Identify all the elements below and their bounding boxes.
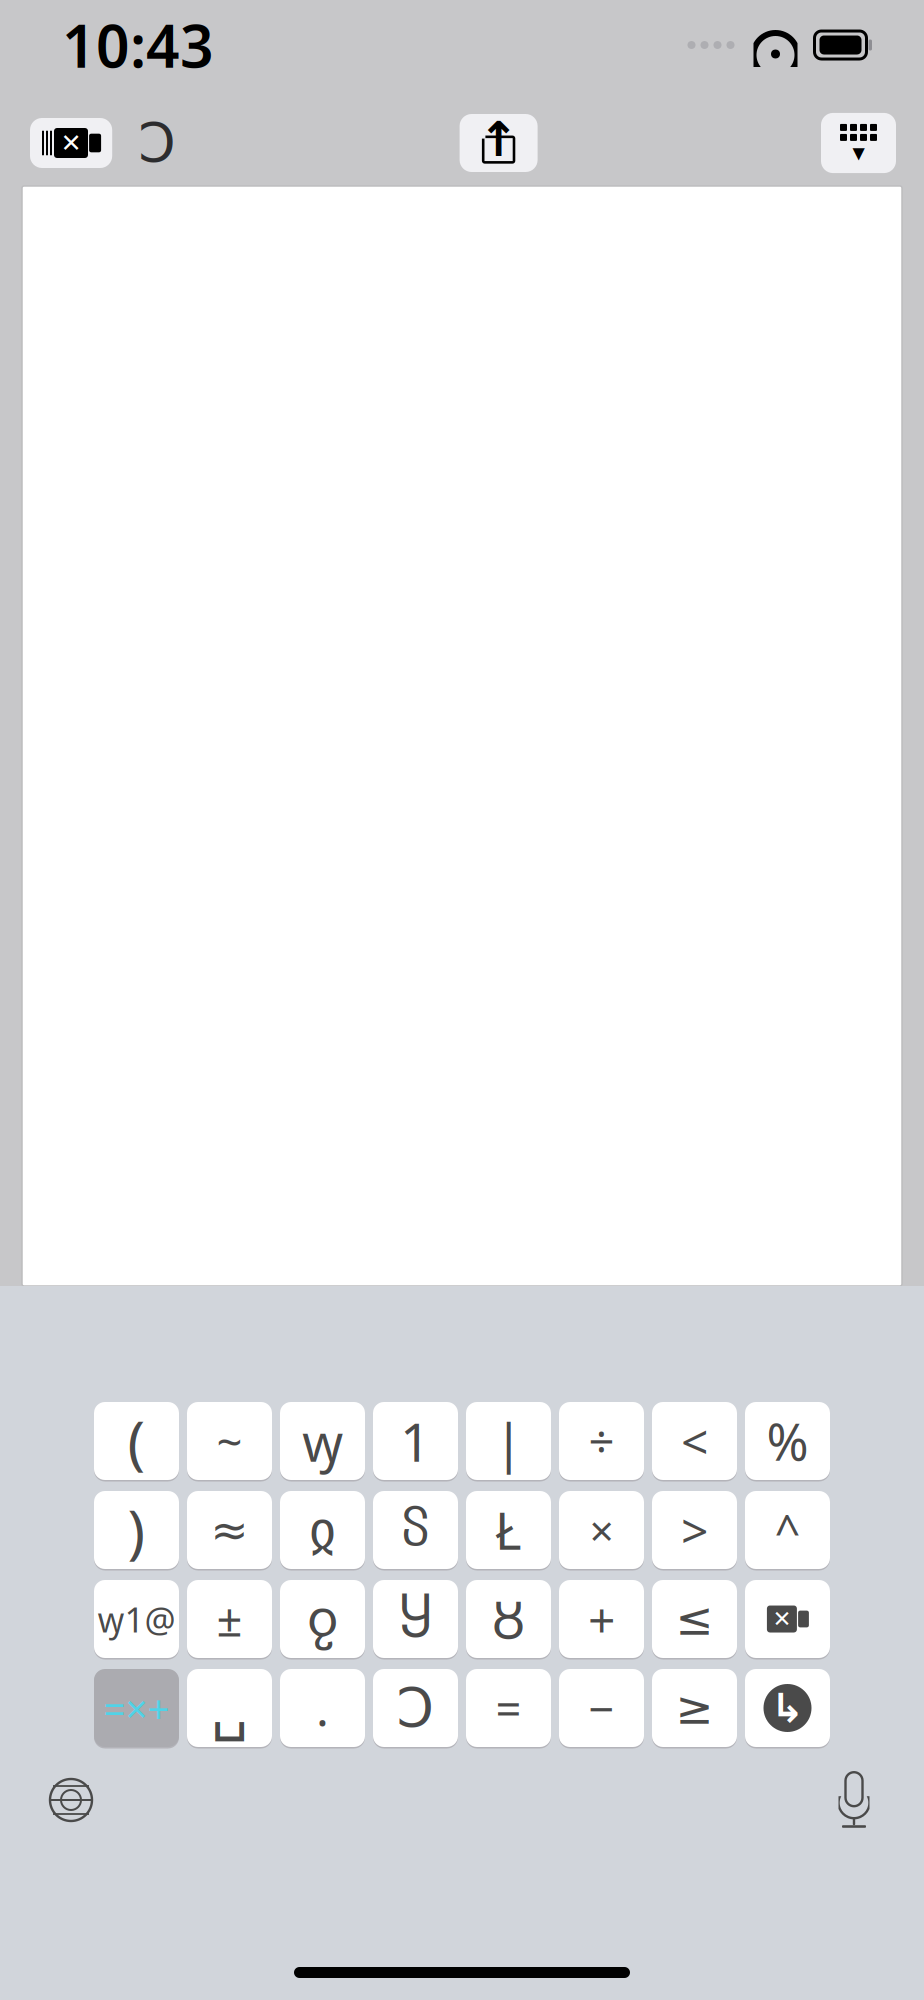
button[interactable]: Return [745, 1669, 830, 1747]
staticText: ^ [774, 1500, 800, 1560]
button[interactable]: % [745, 1402, 830, 1480]
button[interactable]: | [466, 1402, 551, 1480]
button[interactable]: ÷ [559, 1402, 644, 1480]
staticText: ჽ [401, 1504, 430, 1556]
button[interactable]: ≈ [187, 1491, 272, 1569]
staticText: 1 [400, 1406, 431, 1476]
button[interactable]: 1 [373, 1402, 458, 1480]
staticText: ჹ [307, 1589, 337, 1649]
button[interactable]: > [652, 1491, 737, 1569]
button[interactable]: . [280, 1669, 365, 1747]
button[interactable]: ≥ [652, 1669, 737, 1747]
button[interactable]: ჲ [280, 1491, 365, 1569]
staticText: ( [127, 1402, 145, 1480]
staticText: 10:43 [62, 6, 214, 84]
button[interactable]: ꝡ1@ [94, 1580, 179, 1658]
button[interactable]: ~ [187, 1402, 272, 1480]
button[interactable]: < [652, 1402, 737, 1480]
button[interactable]: Ł [466, 1491, 551, 1569]
button[interactable]: ꝡ [280, 1402, 365, 1480]
staticText: Ł [495, 1496, 522, 1564]
button[interactable]: Delete [745, 1580, 830, 1658]
staticText: ჲ [309, 1500, 336, 1560]
button[interactable]: ( [94, 1402, 179, 1480]
button[interactable]: Space [187, 1669, 272, 1747]
staticText: ≤ [675, 1593, 713, 1645]
staticText: = [495, 1678, 521, 1738]
button[interactable]: Clear text [30, 118, 112, 168]
staticText: ↳ [770, 1685, 804, 1731]
button[interactable]: = [466, 1669, 551, 1747]
staticText: . [316, 1676, 329, 1740]
button[interactable]: Dictate [834, 1771, 874, 1829]
button[interactable]: ꓛ [373, 1669, 458, 1747]
staticText: % [766, 1407, 808, 1475]
button[interactable]: Hide keyboard [821, 113, 896, 173]
staticText: ✕ [60, 129, 81, 157]
button[interactable]: × [559, 1491, 644, 1569]
staticText: ꝡ [302, 1406, 343, 1476]
button[interactable]: Ȣ [466, 1580, 551, 1658]
staticText: Ⴘ [399, 1589, 432, 1649]
button[interactable]: + [559, 1580, 644, 1658]
button[interactable]: Next keyboard [48, 1774, 94, 1826]
staticText: ▼ [852, 144, 864, 162]
staticText: × [589, 1502, 613, 1558]
button[interactable]: ) [94, 1491, 179, 1569]
button[interactable]: ^ [745, 1491, 830, 1569]
staticText: ~ [216, 1411, 242, 1471]
staticText: + [588, 1587, 615, 1651]
staticText: ) [127, 1491, 145, 1569]
staticText: ␣ [211, 1675, 248, 1741]
staticText: ✕ [772, 1606, 791, 1632]
staticText: ꝡ1@ [97, 1596, 175, 1642]
button[interactable]: Ⴘ [373, 1580, 458, 1658]
staticText: > [681, 1498, 708, 1562]
button[interactable]: ± [187, 1580, 272, 1658]
staticText: − [588, 1678, 614, 1738]
staticText: ≥ [675, 1682, 713, 1734]
staticText: ≈ [210, 1504, 248, 1556]
button[interactable]: Share [460, 114, 538, 172]
button[interactable]: ≤ [652, 1580, 737, 1658]
button[interactable]: ჹ [280, 1580, 365, 1658]
staticText: | [494, 1406, 523, 1476]
staticText: < [681, 1409, 708, 1473]
staticText: ↑ [479, 112, 519, 167]
button[interactable]: ჽ [373, 1491, 458, 1569]
staticText: ꓛ [396, 1678, 434, 1738]
staticText: =×+ [103, 1682, 169, 1734]
button[interactable]: − [559, 1669, 644, 1747]
staticText: ꓛ [138, 113, 176, 173]
staticText: ÷ [588, 1411, 614, 1471]
staticText: ± [216, 1589, 242, 1649]
button[interactable]: Symbols [94, 1669, 179, 1747]
staticText: Ȣ [491, 1585, 525, 1653]
